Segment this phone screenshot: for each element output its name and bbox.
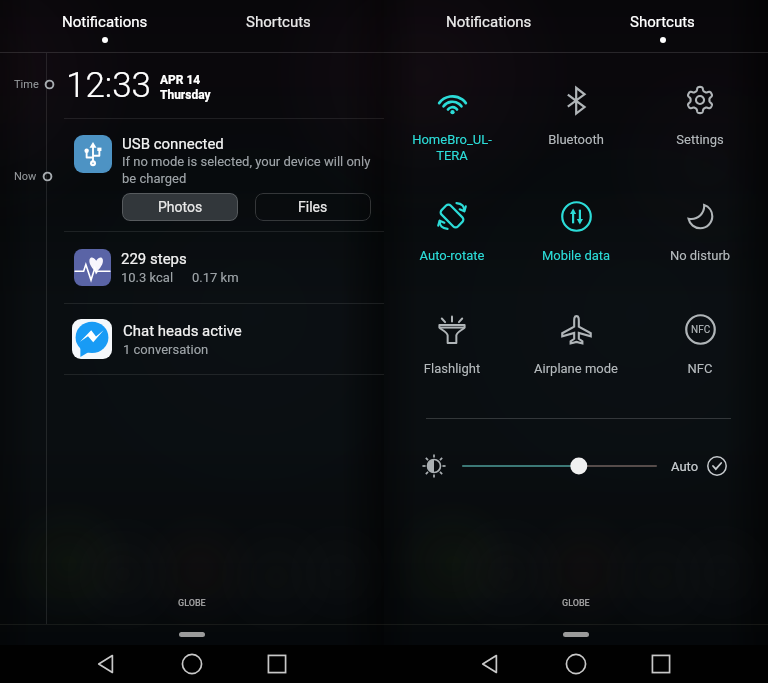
button[interactable]: Mobile data [514, 200, 638, 263]
button[interactable]: NFC [638, 313, 762, 376]
staticText: Photos [158, 199, 203, 215]
button[interactable]: Airplane mode [514, 313, 638, 376]
button[interactable]: Flashlight [390, 313, 514, 376]
staticText: If no mode is selected, your device will… [122, 154, 371, 187]
staticText: Now [14, 170, 37, 183]
button[interactable]: Recents [255, 645, 299, 683]
staticText: Thursday [160, 88, 211, 102]
button[interactable]: Files [255, 193, 371, 221]
staticText: 0.17 km [192, 270, 239, 285]
button[interactable]: Notifications [409, 0, 569, 53]
button[interactable]: Shortcuts [208, 0, 348, 53]
button[interactable]: Notifications [25, 0, 185, 53]
staticText: No disturb [638, 248, 762, 263]
staticText: Settings [638, 132, 762, 147]
staticText: Notifications [62, 13, 148, 31]
button[interactable]: Auto-rotate [390, 200, 514, 263]
button[interactable]: Recents [639, 645, 683, 683]
button[interactable]: Home [554, 645, 598, 683]
staticText: USB connected [122, 135, 224, 153]
staticText: NFC [638, 361, 762, 376]
staticText: HomeBro_UL- TERA [390, 132, 514, 163]
staticText: 229 steps [121, 250, 187, 268]
button[interactable]: Settings [638, 84, 762, 147]
staticText: GLOBE [178, 598, 206, 609]
staticText: Shortcuts [246, 13, 311, 31]
button[interactable]: Bluetooth [514, 84, 638, 147]
staticText: Flashlight [390, 361, 514, 376]
staticText: Bluetooth [514, 132, 638, 147]
staticText: 1 conversation [123, 342, 209, 357]
button[interactable]: Shortcuts [592, 0, 732, 53]
staticText: Shortcuts [630, 13, 695, 31]
staticText: 12:33 [66, 65, 152, 106]
staticText: Chat heads active [123, 322, 242, 340]
staticText: Auto [671, 459, 699, 474]
staticText: NFC [691, 324, 711, 336]
button[interactable]: Back [468, 645, 512, 683]
button[interactable]: Brightness slider [463, 454, 656, 478]
button[interactable]: Back [84, 645, 128, 683]
staticText: Auto-rotate [390, 248, 514, 263]
staticText: Files [298, 199, 328, 215]
button[interactable]: Brightness [423, 455, 445, 477]
button[interactable]: Home [170, 645, 214, 683]
button[interactable]: Auto [671, 456, 727, 476]
button[interactable]: Photos [122, 193, 238, 221]
staticText: GLOBE [562, 598, 590, 609]
button[interactable]: HomeBro_UL- TERA [390, 84, 514, 163]
staticText: Notifications [446, 13, 532, 31]
staticText: Airplane mode [514, 361, 638, 376]
button[interactable]: No disturb [638, 200, 762, 263]
staticText: Time [14, 78, 39, 91]
staticText: APR 14 [160, 73, 201, 87]
staticText: 10.3 kcal [121, 270, 174, 285]
staticText: Mobile data [514, 248, 638, 263]
